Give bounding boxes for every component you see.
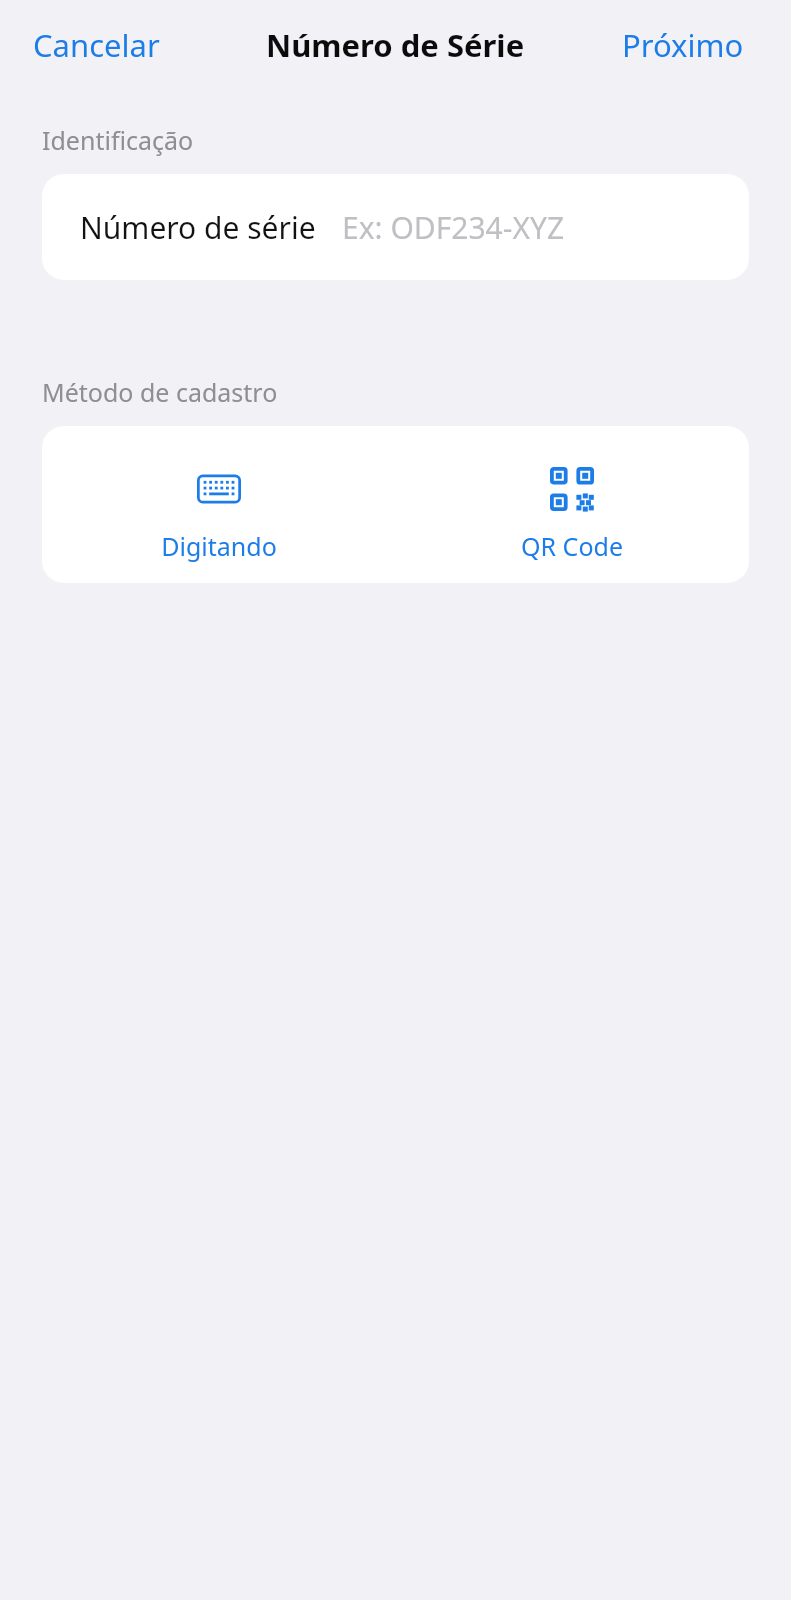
staticText: Cancelar (33, 24, 160, 66)
button[interactable]: Cancelar (33, 24, 160, 66)
staticText: Método de cadastro (42, 375, 278, 409)
staticText: Ex: ODF234-XYZ (342, 207, 565, 248)
staticText: Digitando (161, 529, 277, 563)
button[interactable]: Próximo (622, 24, 744, 66)
staticText: Número de Série (266, 24, 525, 66)
staticText: QR Code (521, 529, 623, 563)
staticText: Número de série (80, 207, 316, 248)
button[interactable]: QR Code (395, 426, 749, 563)
button[interactable]: Digitando (42, 426, 395, 563)
staticText: Próximo (622, 24, 744, 66)
staticText: Identificação (42, 123, 194, 157)
button[interactable]: Número de série (42, 174, 749, 280)
